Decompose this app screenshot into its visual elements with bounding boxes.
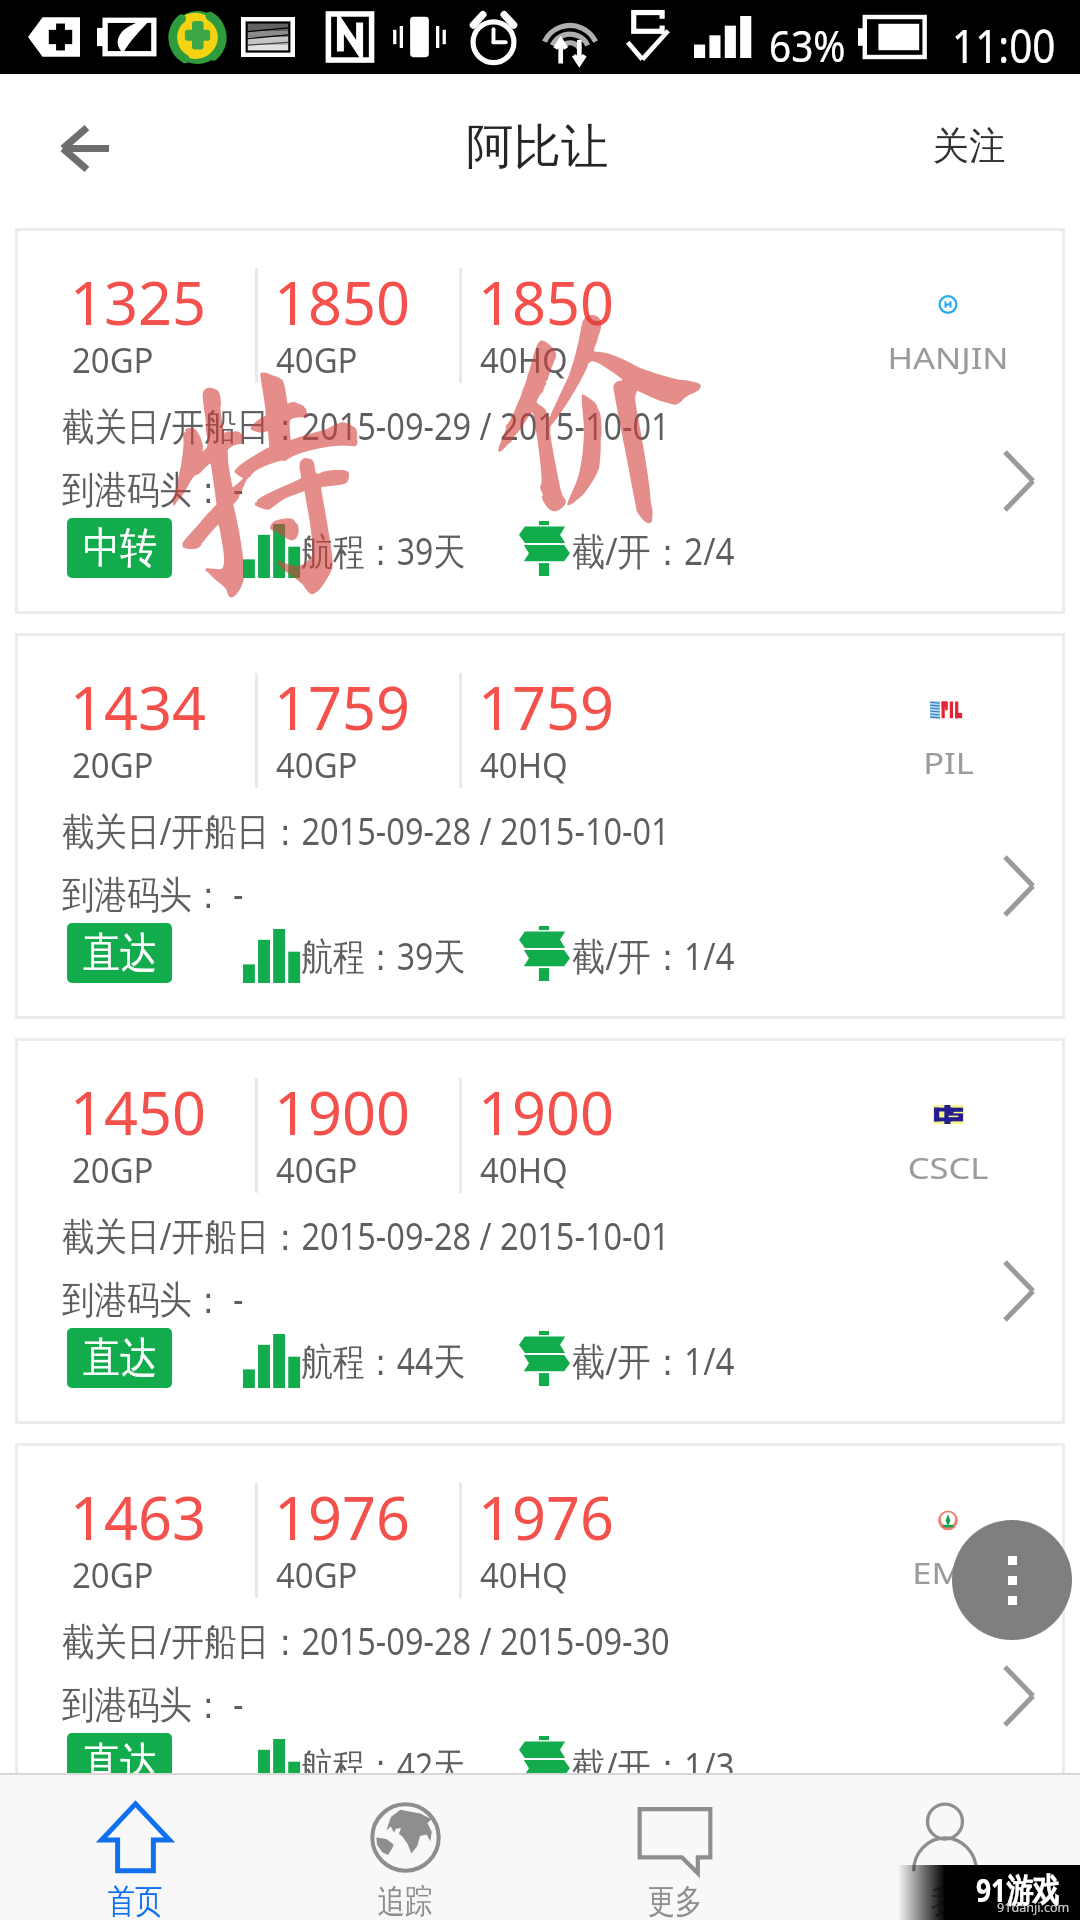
staticText: 到港码头： - <box>62 1272 244 1324</box>
staticText: 1850 <box>478 261 615 343</box>
button[interactable]: 首页 <box>0 1775 270 1920</box>
staticText: 特价 <box>135 253 845 621</box>
staticText: 航程：42天 <box>301 1739 466 1791</box>
button[interactable]: 1325 <box>15 228 1065 614</box>
staticText: 截关日/开船日：2015-09-28 / 2015-09-30 <box>62 1614 670 1666</box>
staticText: 截/开：2/4 <box>572 524 735 576</box>
staticText: 1450 <box>70 1071 207 1153</box>
button[interactable]: More options <box>952 1520 1072 1640</box>
staticText: 1976 <box>478 1476 615 1558</box>
staticText: 我 <box>931 1880 959 1920</box>
staticText: 截关日/开船日：2015-09-28 / 2015-10-01 <box>62 804 670 856</box>
staticText: 20GP <box>72 741 154 789</box>
staticText: 40HQ <box>480 1146 568 1194</box>
button[interactable]: 追踪 <box>270 1775 540 1920</box>
staticText: 航程：39天 <box>301 524 466 576</box>
button[interactable]: 1463 <box>15 1443 1065 1829</box>
staticText: 1900 <box>478 1071 615 1153</box>
staticText: 91游戏 <box>976 1867 1059 1912</box>
staticText: 直达 <box>83 1332 157 1385</box>
staticText: 截/开：1/3 <box>572 1739 735 1791</box>
staticText: 阿比让 <box>466 117 609 177</box>
staticText: 1759 <box>478 666 615 748</box>
staticText: 1759 <box>274 666 411 748</box>
staticText: 截/开：1/4 <box>572 1334 735 1386</box>
staticText: 11:00 <box>952 15 1056 76</box>
button[interactable]: 1434 <box>15 633 1065 1019</box>
staticText: 航程：44天 <box>301 1334 466 1386</box>
button[interactable]: 1450 <box>15 1038 1065 1424</box>
button[interactable]: 我 <box>810 1775 1080 1920</box>
staticText: 到港码头： - <box>62 867 244 919</box>
staticText: 1850 <box>274 261 411 343</box>
staticText: 到港码头： - <box>62 462 244 514</box>
staticText: 20GP <box>72 1551 154 1599</box>
staticText: 40HQ <box>480 741 568 789</box>
staticText: 63% <box>769 16 845 75</box>
staticText: 91danji.com <box>997 1898 1070 1916</box>
staticText: PIL <box>923 743 974 782</box>
staticText: 1325 <box>70 261 207 343</box>
staticText: 1463 <box>70 1476 207 1558</box>
staticText: 1900 <box>274 1071 411 1153</box>
staticText: 40GP <box>276 741 358 789</box>
button[interactable]: 关注 <box>905 104 1033 188</box>
staticText: HANJIN <box>887 338 1009 377</box>
staticText: 40GP <box>276 1146 358 1194</box>
staticText: 更多 <box>648 1880 702 1920</box>
staticText: 20GP <box>72 1146 154 1194</box>
staticText: 航程：39天 <box>301 929 466 981</box>
staticText: 截关日/开船日：2015-09-29 / 2015-10-01 <box>62 399 670 451</box>
staticText: 截/开：1/4 <box>572 929 735 981</box>
staticText: 40GP <box>276 1551 358 1599</box>
staticText: 直达 <box>83 1737 157 1790</box>
staticText: 到港码头： - <box>62 1677 244 1729</box>
staticText: 20GP <box>72 336 154 384</box>
button[interactable]: Back <box>34 98 134 198</box>
staticText: 40GP <box>276 336 358 384</box>
staticText: 关注 <box>932 122 1005 170</box>
staticText: 直达 <box>83 927 157 980</box>
staticText: EMC <box>912 1553 985 1592</box>
staticText: 中转 <box>83 522 157 575</box>
staticText: 1434 <box>70 666 207 748</box>
staticText: 1976 <box>274 1476 411 1558</box>
button[interactable]: 更多 <box>540 1775 810 1920</box>
staticText: 40HQ <box>480 1551 568 1599</box>
staticText: 40HQ <box>480 336 568 384</box>
staticText: 追踪 <box>378 1880 432 1920</box>
staticText: CSCL <box>907 1148 988 1187</box>
staticText: 首页 <box>108 1880 162 1920</box>
staticText: 截关日/开船日：2015-09-28 / 2015-10-01 <box>62 1209 670 1261</box>
